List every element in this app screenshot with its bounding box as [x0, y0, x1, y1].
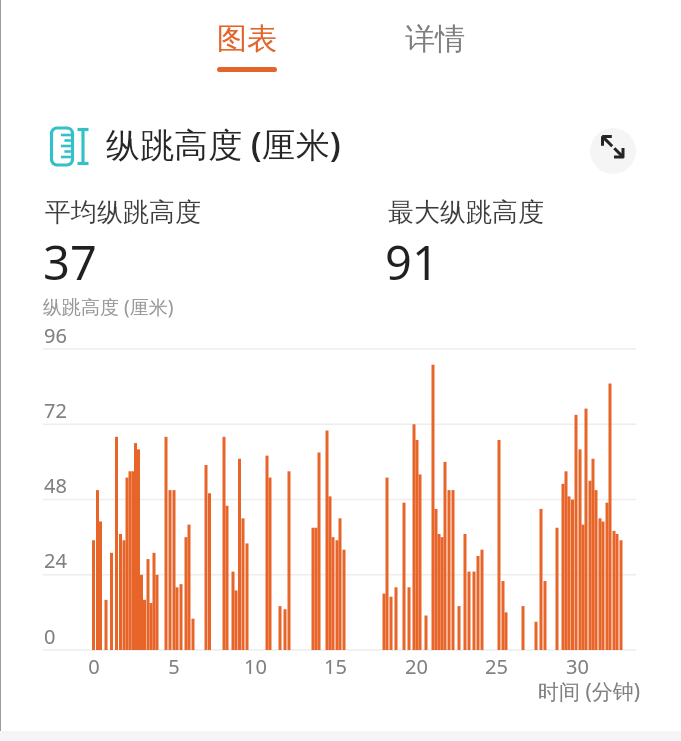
staticText: 15 — [324, 653, 347, 680]
button[interactable]: 图表 — [187, 10, 307, 74]
staticText: 91 — [385, 230, 439, 294]
staticText: 96 — [44, 322, 67, 349]
button[interactable]: 详情 — [375, 10, 495, 74]
staticText: 最大纵跳高度 — [388, 196, 544, 229]
staticText: 24 — [44, 547, 67, 574]
button[interactable] — [590, 128, 636, 174]
staticText: 纵跳高度 (厘米) — [43, 294, 174, 320]
staticText: 纵跳高度 (厘米) — [106, 121, 341, 167]
staticText: 0 — [44, 623, 56, 650]
staticText: 时间 (分钟) — [538, 677, 641, 706]
staticText: 5 — [168, 653, 180, 680]
staticText: 20 — [405, 653, 428, 680]
staticText: 25 — [485, 653, 508, 680]
staticText: 详情 — [405, 20, 465, 58]
staticText: 48 — [44, 472, 67, 499]
staticText: 37 — [43, 230, 97, 294]
staticText: 图表 — [217, 20, 277, 58]
staticText: 0 — [88, 653, 100, 680]
staticText: 30 — [566, 653, 589, 680]
staticText: 平均纵跳高度 — [45, 196, 201, 229]
staticText: 10 — [244, 653, 267, 680]
staticText: 72 — [44, 397, 67, 424]
